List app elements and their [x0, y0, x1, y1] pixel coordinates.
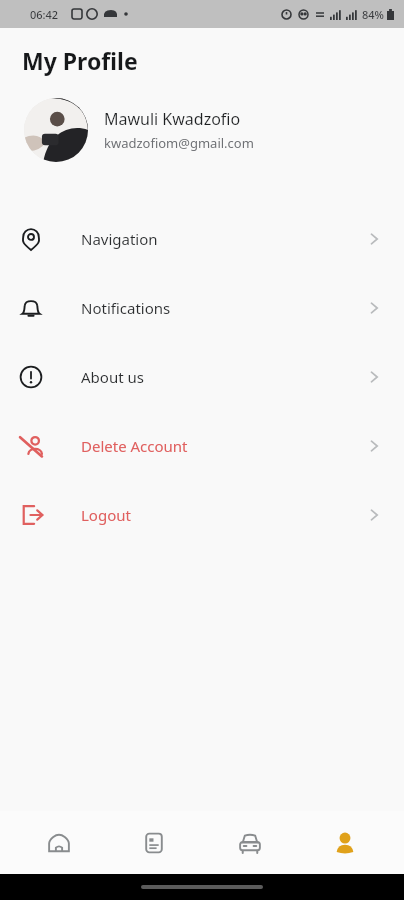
- button[interactable]: Notifications: [0, 273, 404, 342]
- staticText: 06:42: [30, 7, 59, 22]
- button[interactable]: Navigation: [0, 204, 404, 273]
- button[interactable]: Delete Account: [0, 411, 404, 480]
- staticText: Notifications: [81, 298, 171, 318]
- staticText: Logout: [81, 505, 131, 525]
- button[interactable]: Profile: [309, 811, 381, 874]
- button[interactable]: About us: [0, 342, 404, 411]
- button[interactable]: Vehicles: [214, 811, 286, 874]
- button[interactable]: Home: [23, 811, 95, 874]
- button[interactable]: Logout: [0, 480, 404, 549]
- staticText: About us: [81, 367, 144, 387]
- staticText: kwadzofiom@gmail.com: [104, 134, 254, 152]
- staticText: My Profile: [22, 45, 138, 76]
- staticText: 84%: [362, 7, 384, 22]
- button[interactable]: Documents: [118, 811, 190, 874]
- staticText: Mawuli Kwadzofio: [104, 108, 241, 130]
- staticText: Delete Account: [81, 436, 188, 456]
- staticText: Navigation: [81, 229, 158, 249]
